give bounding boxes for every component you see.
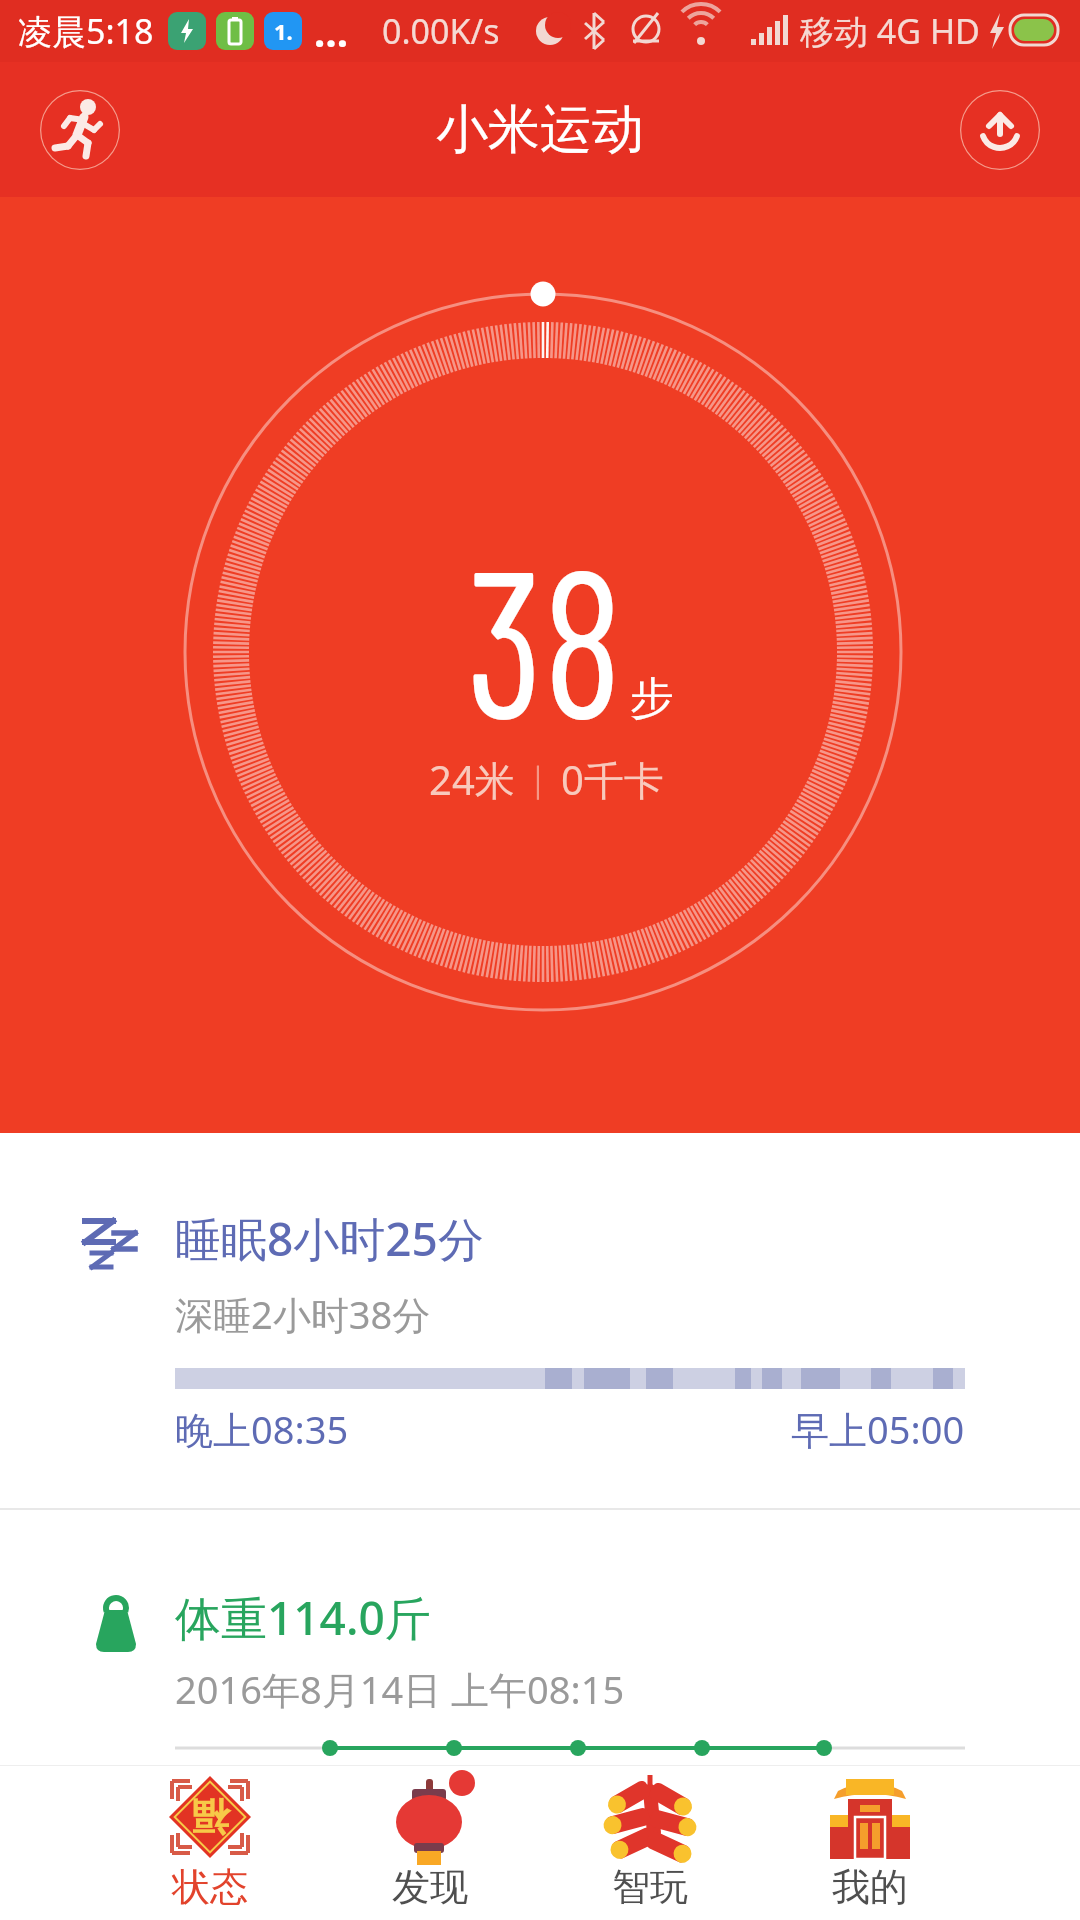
staticText: 凌晨5:18	[18, 8, 154, 54]
staticText: 深睡2小时38分	[175, 1288, 431, 1340]
staticText: 0.00K/s	[382, 8, 500, 54]
staticText: 发现	[392, 1863, 468, 1911]
staticText: …	[314, 4, 349, 58]
staticText: 福	[191, 1793, 229, 1841]
button[interactable]: 智玩	[540, 1766, 760, 1920]
button[interactable]	[40, 90, 120, 170]
staticText: ｜	[521, 758, 555, 801]
staticText: 早上05:00	[791, 1403, 965, 1455]
staticText: 睡眠8小时25分	[175, 1207, 484, 1270]
staticText: 状态	[172, 1863, 248, 1911]
button[interactable]: 睡眠8小时25分	[0, 1133, 1080, 1510]
staticText: 1.	[274, 16, 293, 46]
staticText: 2016年8月14日 上午08:15	[175, 1663, 625, 1715]
staticText: 24米	[429, 752, 515, 807]
button[interactable]	[960, 90, 1040, 170]
staticText: 我的	[832, 1863, 908, 1911]
button[interactable]: 体重114.0斤	[0, 1510, 1080, 1765]
staticText: 38	[467, 510, 622, 760]
staticText: 小米运动	[436, 97, 644, 163]
staticText: 晚上08:35	[175, 1403, 349, 1455]
button[interactable]: 发现	[320, 1766, 540, 1920]
button[interactable]: 福	[100, 1766, 320, 1920]
staticText: 步	[630, 671, 674, 726]
staticText: 智玩	[612, 1863, 688, 1911]
staticText: 体重114.0斤	[175, 1586, 431, 1649]
button[interactable]: 我的	[760, 1766, 980, 1920]
staticText: 0千卡	[561, 752, 664, 807]
staticText: 移动 4G HD	[800, 8, 980, 54]
